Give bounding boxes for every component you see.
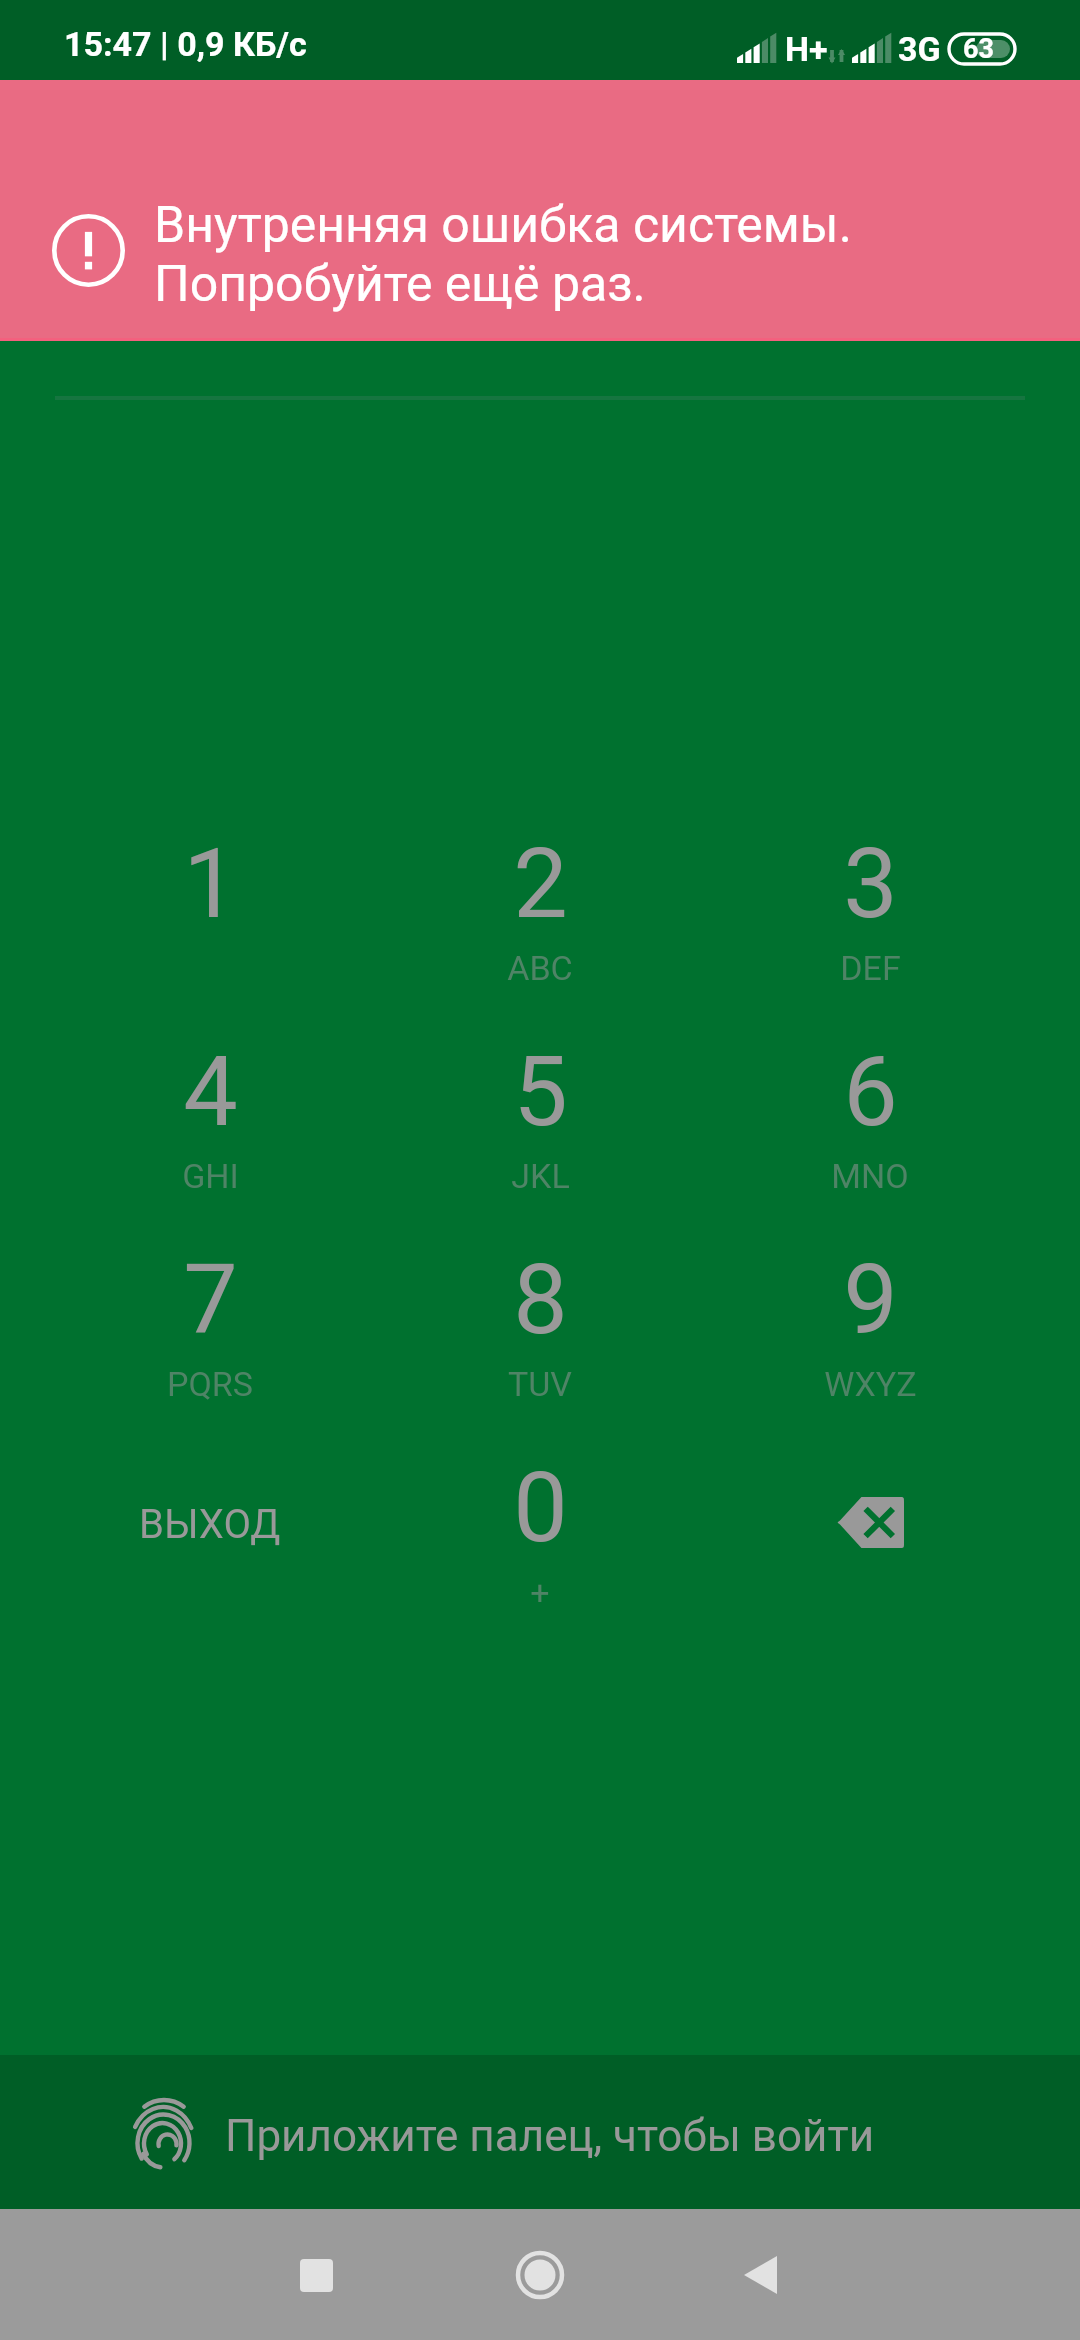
- button[interactable]: Стереть: [705, 1446, 1035, 1654]
- button[interactable]: 0: [375, 1446, 705, 1654]
- button[interactable]: Home: [490, 2225, 590, 2325]
- staticText: 5: [513, 1035, 568, 1149]
- staticText: 15:47 | 0,9 КБ/с: [64, 24, 307, 64]
- button[interactable]: Отпечаток пальца: [0, 2055, 1080, 2209]
- other: Отпечаток пальца: [132, 2095, 196, 2171]
- button[interactable]: 3: [705, 822, 1035, 1030]
- staticText: ABC: [507, 948, 573, 988]
- staticText: 6: [843, 1035, 898, 1149]
- staticText: PQRS: [167, 1364, 253, 1404]
- button[interactable]: 8: [375, 1238, 705, 1446]
- button[interactable]: 4: [45, 1030, 375, 1238]
- button[interactable]: 2: [375, 822, 705, 1030]
- staticText: Попробуйте ещё раз.: [154, 255, 646, 314]
- button[interactable]: 9: [705, 1238, 1035, 1446]
- button[interactable]: 1: [45, 822, 375, 1030]
- staticText: TUV: [508, 1364, 572, 1404]
- button[interactable]: ВЫХОД: [45, 1446, 375, 1654]
- staticText: 3: [843, 827, 898, 941]
- staticText: 9: [843, 1243, 898, 1357]
- staticText: H+: [785, 29, 828, 69]
- staticText: 4: [183, 1035, 238, 1149]
- button[interactable]: Back: [710, 2225, 810, 2325]
- staticText: WXYZ: [824, 1364, 917, 1404]
- staticText: 8: [513, 1243, 568, 1357]
- staticText: DEF: [840, 948, 901, 988]
- staticText: JKL: [511, 1156, 570, 1196]
- staticText: 2: [513, 827, 568, 941]
- staticText: 3G: [898, 29, 941, 69]
- staticText: ВЫХОД: [139, 1501, 281, 1548]
- button[interactable]: Recents: [266, 2225, 366, 2325]
- staticText: +: [530, 1572, 550, 1612]
- staticText: Приложите палец, чтобы войти: [225, 2110, 875, 2162]
- button[interactable]: 7: [45, 1238, 375, 1446]
- staticText: 1: [183, 827, 238, 941]
- staticText: 0: [513, 1451, 568, 1565]
- button[interactable]: 5: [375, 1030, 705, 1238]
- staticText: 7: [183, 1243, 238, 1357]
- staticText: Внутренняя ошибка системы.: [154, 196, 852, 255]
- staticText: 63: [963, 33, 994, 65]
- staticText: GHI: [182, 1156, 239, 1196]
- staticText: MNO: [831, 1156, 909, 1196]
- button[interactable]: 6: [705, 1030, 1035, 1238]
